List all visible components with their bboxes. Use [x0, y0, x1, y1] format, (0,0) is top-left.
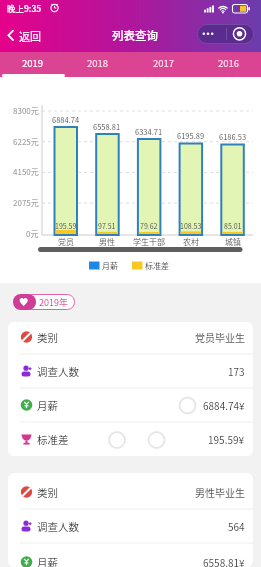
- staticText: 调查人数: [37, 519, 79, 534]
- staticText: 2019: [22, 56, 44, 70]
- staticText: 2018: [87, 56, 109, 70]
- button[interactable]: [8, 422, 253, 456]
- button[interactable]: 2018: [65, 52, 130, 73]
- staticText: 月薪: [102, 260, 118, 272]
- staticText: 类别: [37, 485, 58, 500]
- staticText: 月薪: [37, 398, 58, 413]
- staticText: 标准差: [145, 260, 169, 272]
- staticText: 195.59¥: [208, 432, 245, 446]
- staticText: 学生干部: [133, 236, 165, 246]
- staticText: 108.53: [180, 221, 202, 231]
- staticText: 6558.81: [93, 121, 121, 131]
- staticText: 8300元: [13, 105, 39, 117]
- staticText: 调查人数: [37, 364, 79, 379]
- staticText: 6558.81¥: [203, 555, 245, 567]
- staticText: 173: [228, 364, 245, 378]
- button[interactable]: [8, 354, 253, 388]
- button[interactable]: [8, 388, 253, 422]
- staticText: 月薪: [37, 555, 58, 567]
- staticText: 0元: [26, 228, 39, 240]
- staticText: 2017: [153, 56, 175, 70]
- staticText: 6186.53: [219, 131, 247, 141]
- button[interactable]: 2019: [0, 52, 65, 73]
- staticText: 6334.71: [135, 126, 163, 136]
- staticText: 195.59: [55, 221, 77, 231]
- staticText: 564: [228, 519, 245, 533]
- button[interactable]: [8, 545, 253, 567]
- staticText: 4150元: [13, 166, 39, 178]
- staticText: 97.51: [98, 221, 116, 231]
- staticText: 标准差: [37, 432, 69, 447]
- button[interactable]: 2017: [131, 52, 196, 73]
- staticText: 党员毕业生: [195, 330, 245, 344]
- staticText: 农村: [183, 236, 199, 246]
- staticText: 返回: [19, 28, 41, 43]
- staticText: 6884.74: [52, 114, 80, 124]
- staticText: 2019年: [39, 296, 68, 309]
- staticText: 6225元: [13, 136, 39, 148]
- staticText: 6884.74¥: [203, 398, 245, 412]
- staticText: 85.01: [224, 221, 242, 231]
- staticText: 2016: [218, 56, 240, 70]
- button[interactable]: [8, 475, 253, 509]
- button[interactable]: [2, 23, 48, 48]
- staticText: 6195.89: [177, 130, 205, 140]
- staticText: 男性毕业生: [195, 485, 245, 499]
- staticText: 类别: [37, 330, 58, 345]
- staticText: 79.62: [140, 221, 158, 231]
- button[interactable]: [197, 24, 254, 44]
- staticText: 2075元: [13, 197, 39, 209]
- staticText: 晚上9:35: [7, 2, 42, 14]
- button[interactable]: [8, 509, 253, 543]
- staticText: 党员: [58, 236, 74, 246]
- button[interactable]: [13, 294, 36, 310]
- staticText: 男性: [99, 236, 115, 246]
- staticText: 城镇: [225, 236, 241, 246]
- button[interactable]: [8, 320, 253, 354]
- button[interactable]: 2016: [196, 52, 261, 73]
- staticText: 列表查询: [112, 27, 158, 43]
